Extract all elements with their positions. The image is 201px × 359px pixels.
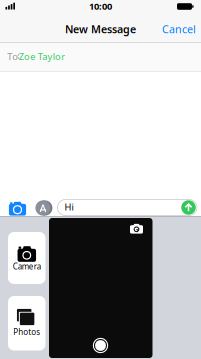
staticText: Zoe Taylor [19, 50, 65, 63]
button[interactable]: Camera [8, 202, 26, 216]
staticText: Cancel [162, 22, 196, 36]
staticText: New Message [65, 22, 136, 36]
button[interactable]: iMessage apps [35, 200, 51, 216]
staticText: Camera [13, 261, 41, 272]
button[interactable]: Take photo [93, 338, 108, 353]
staticText: Photos [13, 327, 40, 337]
button[interactable]: Camera [8, 232, 45, 284]
button[interactable]: Message field [57, 199, 197, 215]
staticText: To [7, 50, 18, 63]
staticText: Hi [64, 201, 73, 213]
button[interactable]: Switch camera [130, 224, 143, 234]
staticText: 10:00 [89, 0, 112, 12]
button[interactable]: Cancel [162, 22, 196, 36]
button[interactable]: Send [181, 200, 196, 215]
button[interactable]: Zoe Taylor [19, 50, 65, 63]
button[interactable]: Photos [8, 296, 45, 350]
